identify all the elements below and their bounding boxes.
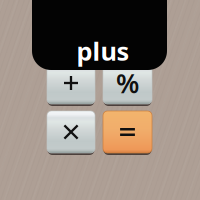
button[interactable]: Equals <box>103 110 152 154</box>
button[interactable]: Plus <box>47 61 95 105</box>
button[interactable]: Percent <box>103 61 152 105</box>
staticText: plus <box>76 34 129 68</box>
button[interactable]: Multiply <box>47 110 95 154</box>
staticText: % <box>116 65 139 101</box>
